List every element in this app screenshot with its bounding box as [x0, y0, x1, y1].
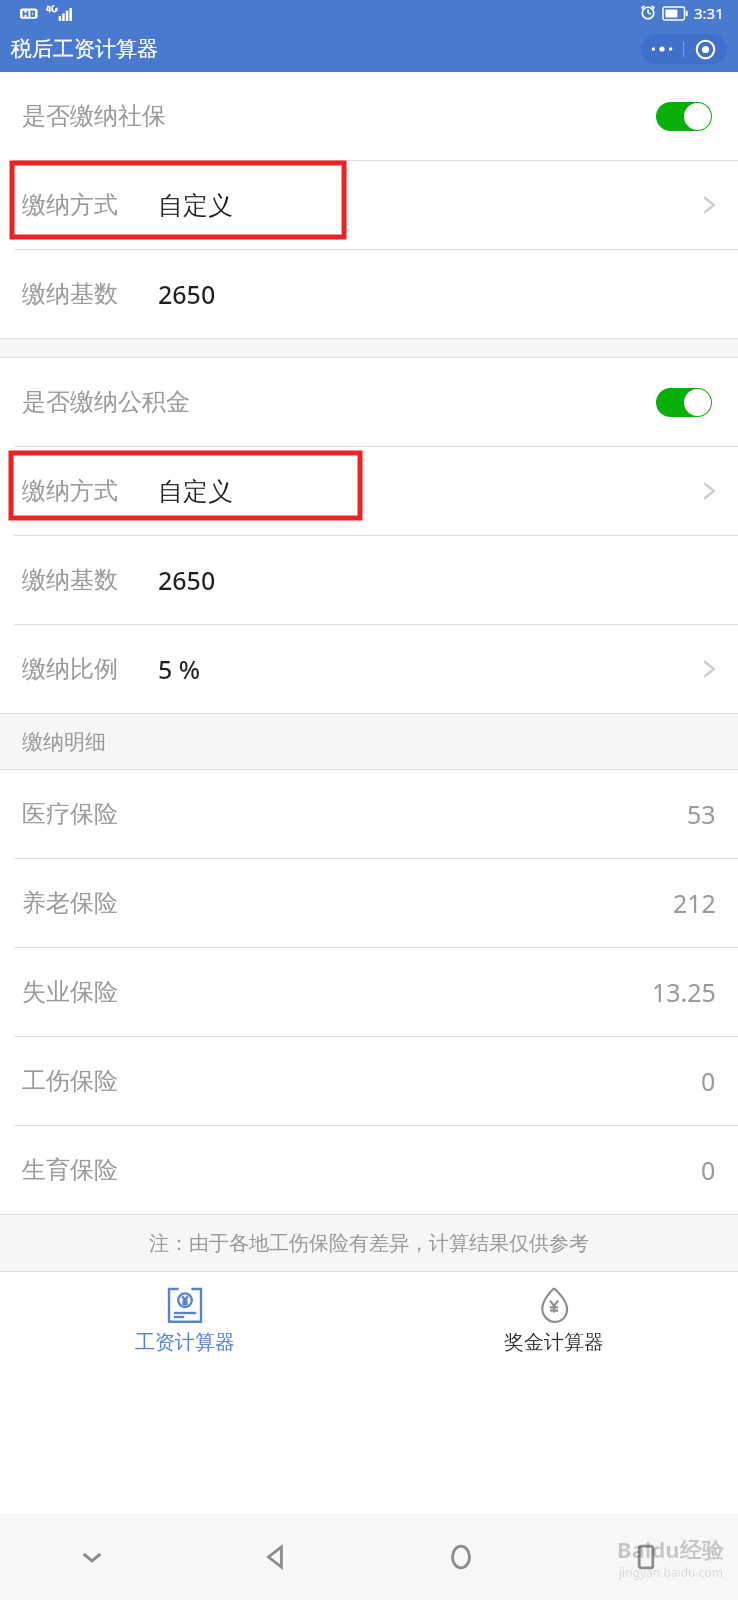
- button[interactable]: 医疗保险: [0, 770, 738, 858]
- staticText: 缴纳基数: [22, 565, 118, 595]
- staticText: Baidu经验: [617, 1534, 724, 1564]
- staticText: 缴纳基数: [22, 279, 118, 309]
- staticText: 奖金计算器: [504, 1330, 604, 1355]
- button[interactable]: Home: [444, 1540, 478, 1574]
- button[interactable]: 是否缴纳公积金: [0, 358, 738, 446]
- staticText: 医疗保险: [22, 799, 118, 829]
- staticText: 自定义: [158, 476, 233, 507]
- button[interactable]: 失业保险: [0, 948, 738, 1036]
- staticText: jingyan.baidu.com: [619, 1564, 723, 1580]
- staticText: 53: [687, 797, 716, 831]
- staticText: 是否缴纳公积金: [22, 387, 190, 417]
- staticText: 缴纳比例: [22, 654, 118, 684]
- button[interactable]: 缴纳基数: [0, 536, 738, 624]
- staticText: 缴纳方式: [22, 476, 118, 506]
- staticText: 失业保险: [22, 977, 118, 1007]
- button[interactable]: 是否缴纳社保: [0, 72, 738, 160]
- button[interactable]: 缴纳方式: [0, 447, 738, 535]
- button[interactable]: 缴纳方式: [0, 161, 738, 249]
- staticText: 0: [701, 1153, 716, 1187]
- button[interactable]: Toggle 是否缴纳社保: [656, 102, 712, 131]
- button[interactable]: 奖金计算器: [369, 1272, 738, 1368]
- button[interactable]: 养老保险: [0, 859, 738, 947]
- button[interactable]: 工资计算器: [0, 1272, 369, 1368]
- staticText: 生育保险: [22, 1155, 118, 1185]
- staticText: 212: [673, 886, 716, 920]
- staticText: 3:31: [694, 3, 724, 23]
- staticText: 工资计算器: [135, 1330, 235, 1355]
- button[interactable]: 工伤保险: [0, 1037, 738, 1125]
- staticText: 税后工资计算器: [11, 36, 158, 62]
- button[interactable]: More options: [641, 34, 727, 64]
- staticText: 缴纳明细: [22, 729, 106, 755]
- staticText: 工伤保险: [22, 1066, 118, 1096]
- staticText: 养老保险: [22, 888, 118, 918]
- button[interactable]: Toggle 是否缴纳公积金: [656, 388, 712, 417]
- staticText: 2650: [158, 563, 216, 597]
- staticText: 注：由于各地工伤保险有差异，计算结果仅供参考: [149, 1231, 589, 1256]
- button[interactable]: 缴纳比例: [0, 625, 738, 713]
- staticText: 0: [701, 1064, 716, 1098]
- staticText: 是否缴纳社保: [22, 101, 166, 131]
- staticText: 2650: [158, 277, 216, 311]
- staticText: 13.25: [652, 975, 716, 1009]
- button[interactable]: Recents: [629, 1540, 663, 1574]
- button[interactable]: Back: [259, 1540, 293, 1574]
- staticText: 自定义: [158, 190, 233, 221]
- button[interactable]: 缴纳基数: [0, 250, 738, 338]
- staticText: 5 %: [158, 652, 201, 686]
- button[interactable]: Hide keyboard: [77, 1542, 107, 1572]
- staticText: 缴纳方式: [22, 190, 118, 220]
- button[interactable]: 生育保险: [0, 1126, 738, 1214]
